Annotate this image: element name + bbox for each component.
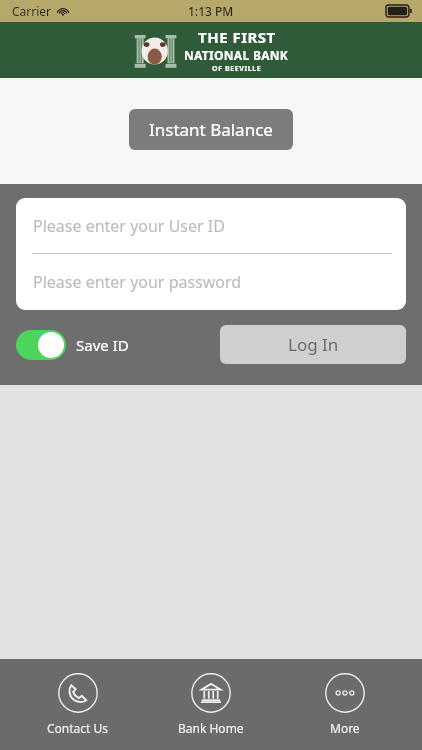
button[interactable]: More <box>289 659 401 736</box>
staticText: More <box>330 720 360 736</box>
staticText: Contact Us <box>47 720 109 736</box>
staticText: Log In <box>288 333 339 356</box>
button[interactable]: Instant Balance <box>129 109 293 150</box>
staticText: Instant Balance <box>149 118 273 141</box>
staticText: Carrier <box>12 3 52 19</box>
staticText: Save ID <box>76 335 129 355</box>
staticText: OF BEEVILLE <box>212 64 262 74</box>
button[interactable]: Contact Us <box>22 659 134 736</box>
button[interactable]: Bank Home <box>155 659 267 736</box>
button[interactable]: Please enter your password <box>16 254 406 310</box>
staticText: Please enter your password <box>33 271 242 293</box>
staticText: Bank Home <box>178 720 244 736</box>
button[interactable]: Log In <box>220 325 406 364</box>
staticText: Please enter your User ID <box>33 215 225 237</box>
button[interactable]: Save ID <box>16 330 129 360</box>
staticText: NATIONAL BANK <box>184 47 289 63</box>
button[interactable]: Please enter your User ID <box>16 198 406 254</box>
staticText: 1:13 PM <box>188 3 234 19</box>
staticText: THE FIRST <box>198 27 276 47</box>
